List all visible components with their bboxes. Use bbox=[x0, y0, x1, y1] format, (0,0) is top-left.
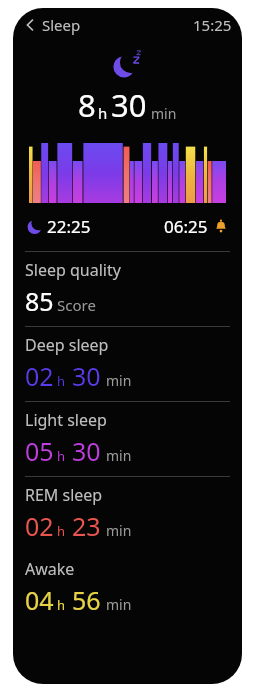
staticText: Light sleep bbox=[25, 409, 107, 431]
staticText: min bbox=[106, 521, 132, 540]
staticText: min bbox=[151, 104, 177, 123]
button[interactable]: Sleep stages chart bbox=[29, 143, 226, 203]
staticText: 23 bbox=[72, 509, 101, 543]
staticText: min bbox=[106, 371, 132, 390]
staticText: 06:25 bbox=[164, 215, 208, 238]
staticText: h bbox=[57, 372, 66, 390]
staticText: Sleep bbox=[42, 15, 81, 35]
staticText: REM sleep bbox=[25, 484, 103, 506]
staticText: 22:25 bbox=[47, 215, 91, 238]
staticText: h bbox=[98, 103, 108, 123]
button[interactable]: Deep sleep bbox=[13, 326, 242, 401]
staticText: min bbox=[106, 595, 132, 614]
staticText: 02 bbox=[25, 359, 54, 393]
staticText: 02 bbox=[25, 509, 54, 543]
staticText: Sleep quality bbox=[25, 259, 121, 281]
staticText: Awake bbox=[25, 558, 75, 580]
button[interactable]: Sleep quality bbox=[13, 251, 242, 326]
button[interactable]: REM sleep bbox=[13, 476, 242, 551]
staticText: Deep sleep bbox=[25, 334, 109, 356]
button[interactable]: Back bbox=[23, 13, 83, 37]
staticText: h bbox=[57, 447, 66, 465]
staticText: h bbox=[57, 596, 66, 614]
staticText: Score bbox=[57, 295, 96, 315]
staticText: 30 bbox=[111, 84, 147, 126]
staticText: 30 bbox=[72, 359, 101, 393]
staticText: 05 bbox=[25, 434, 54, 468]
staticText: min bbox=[106, 446, 132, 465]
button[interactable]: Awake bbox=[13, 551, 242, 625]
button[interactable]: Light sleep bbox=[13, 401, 242, 476]
staticText: 56 bbox=[72, 583, 101, 617]
staticText: 30 bbox=[72, 434, 101, 468]
staticText: 85 bbox=[25, 284, 54, 318]
staticText: 15:25 bbox=[193, 15, 232, 35]
staticText: 04 bbox=[25, 583, 54, 617]
staticText: 8 bbox=[78, 84, 96, 126]
staticText: h bbox=[57, 522, 66, 540]
